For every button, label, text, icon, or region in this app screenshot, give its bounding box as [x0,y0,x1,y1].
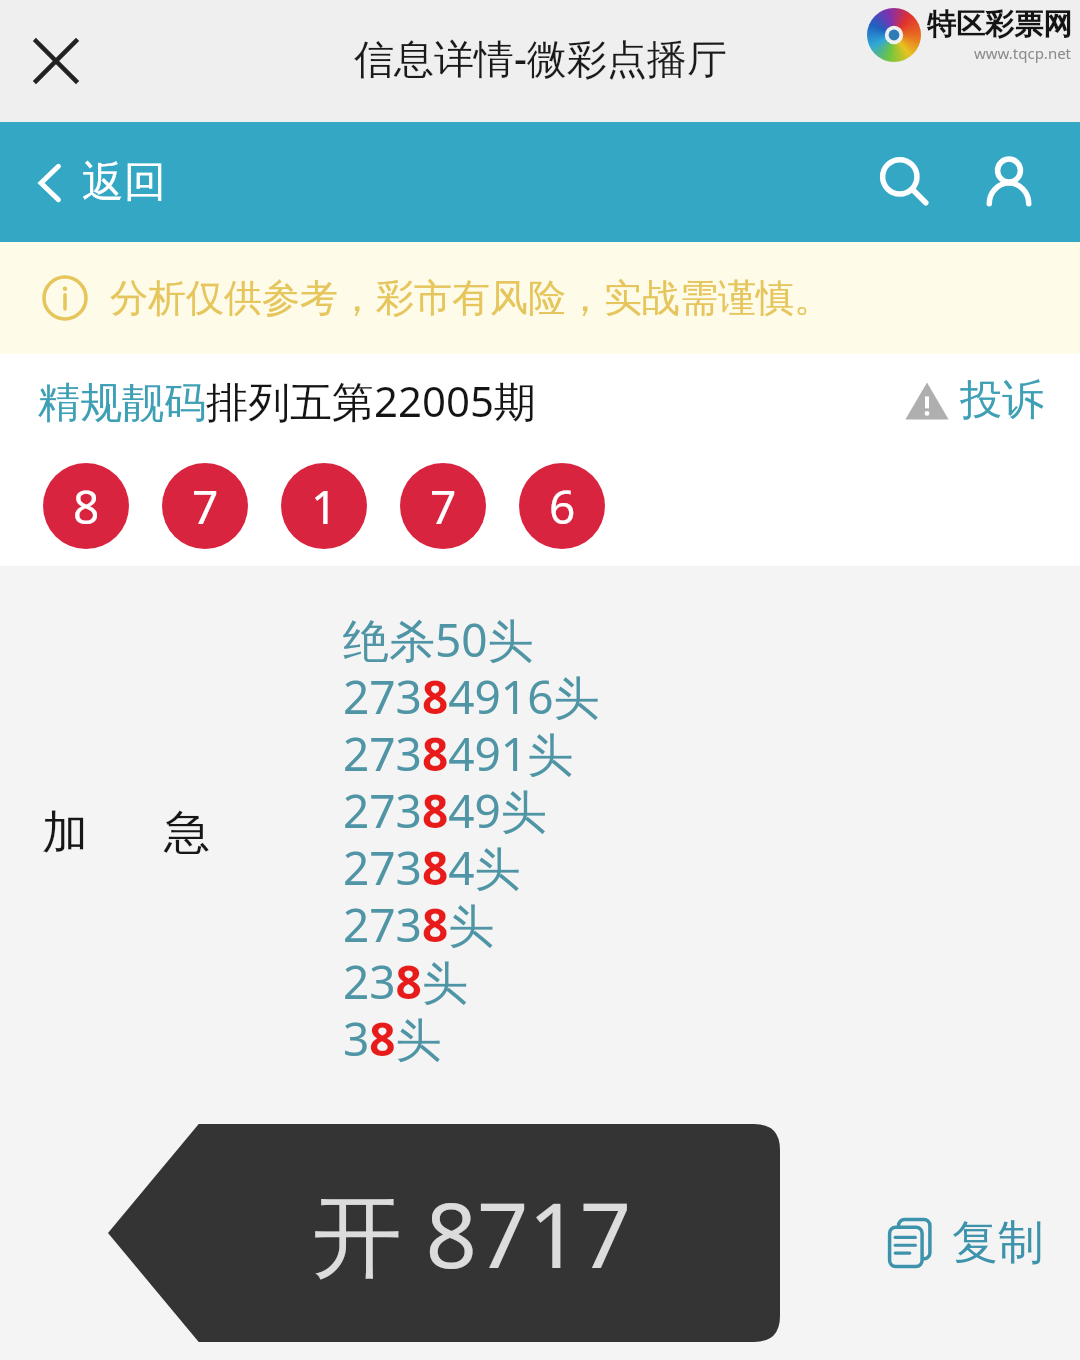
staticText: 分析仅供参考，彩市有风险，实战需谨慎。 [110,274,832,322]
button[interactable]: 投诉 [904,374,1044,427]
staticText: 273849头 [343,779,547,836]
staticText: 27384头 [343,836,521,893]
button[interactable]: 开 8717 [108,1124,780,1342]
staticText: www.tqcp.net [974,43,1072,63]
staticText: 7 [430,475,457,538]
staticText: 8 [73,475,100,538]
staticText: 1 [311,475,338,538]
staticText: 38头 [343,1007,442,1064]
button[interactable]: Search [864,141,946,223]
staticText: 7 [192,475,219,538]
button[interactable]: Account [968,141,1050,223]
staticText: 投诉 [960,374,1044,427]
staticText: 特区彩票网 [927,6,1072,43]
staticText: 复制 [952,1214,1044,1272]
staticText: 返回 [82,156,166,209]
button[interactable]: 返回 [36,156,166,209]
staticText: 27384916头 [343,665,600,722]
staticText: 精规靓码排列五第22005期 [38,372,537,429]
button[interactable]: 复制 [884,1214,1044,1272]
staticText: 2738头 [343,893,495,950]
staticText: 238头 [343,950,468,1007]
staticText: 信息详情-微彩点播厅 [354,30,727,85]
staticText: 急 [164,804,210,862]
staticText: 2738491头 [343,722,574,779]
staticText: 绝杀50头 [343,608,534,665]
button[interactable]: Close [22,27,90,95]
staticText: 加 [42,804,88,862]
staticText: 开 8717 [312,1172,632,1295]
staticText: 6 [549,475,576,538]
